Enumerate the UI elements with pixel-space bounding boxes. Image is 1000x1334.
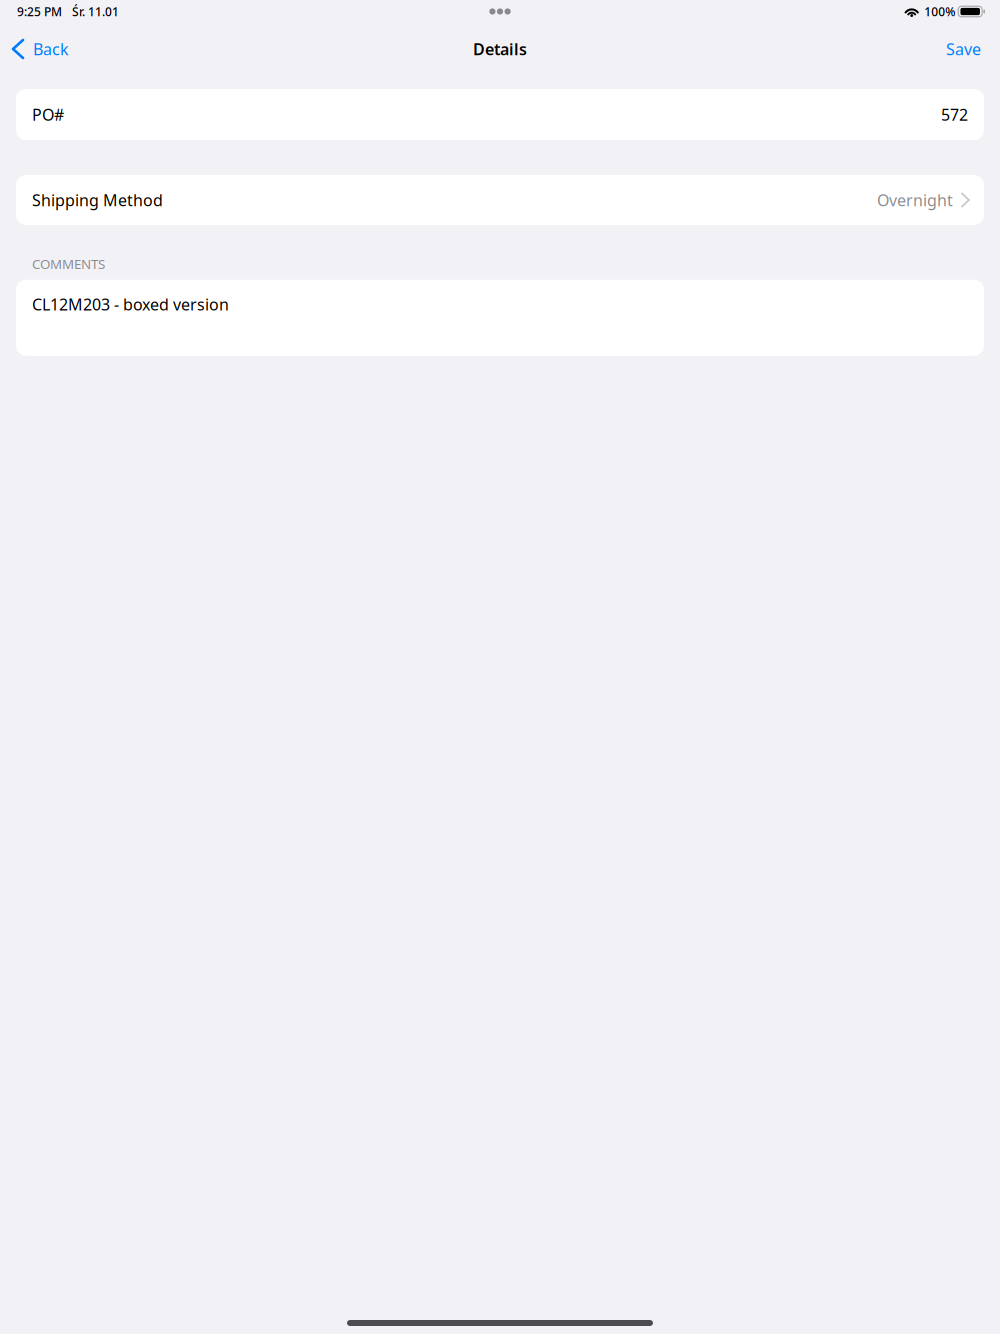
button[interactable]: Save — [936, 33, 1000, 65]
staticText: 9:25 PM — [17, 3, 62, 19]
staticText: COMMENTS — [32, 255, 105, 273]
staticText: Śr. 11.01 — [72, 3, 119, 19]
button[interactable]: Shipping Method — [16, 175, 984, 225]
staticText: 572 — [941, 104, 968, 125]
button[interactable]: PO# — [16, 89, 984, 140]
staticText: Back — [33, 38, 69, 60]
staticText: Save — [946, 38, 981, 60]
staticText: 100% — [924, 3, 955, 19]
button[interactable]: Back — [0, 33, 77, 65]
staticText: PO# — [32, 104, 64, 125]
staticText: Overnight — [877, 189, 953, 211]
staticText: Details — [473, 38, 527, 60]
staticText: Shipping Method — [32, 189, 163, 211]
button[interactable]: CL12M203 - boxed version — [16, 280, 984, 356]
staticText: CL12M203 - boxed version — [32, 294, 229, 315]
